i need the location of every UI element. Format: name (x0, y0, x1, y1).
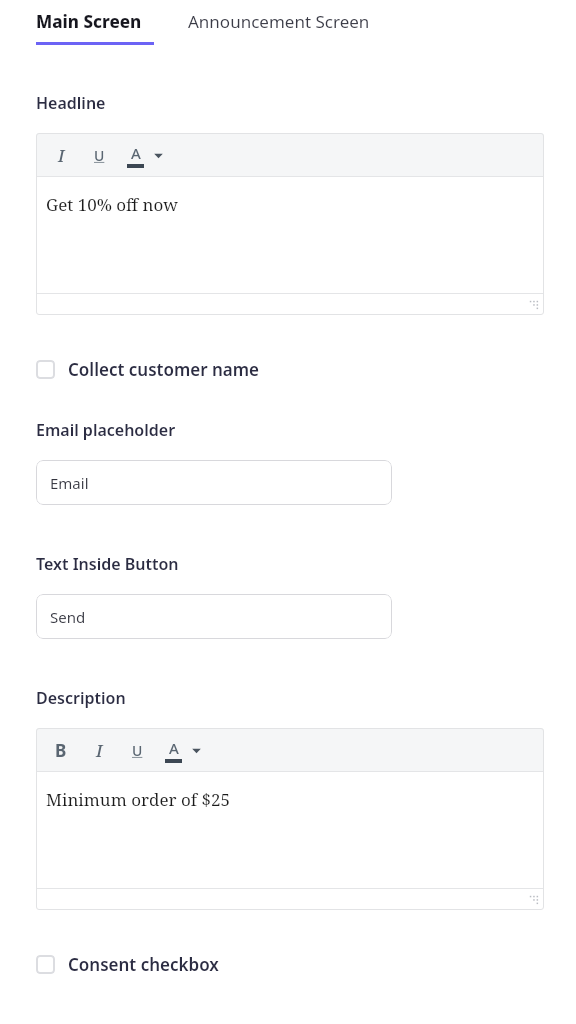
staticText: Get 10% off now (46, 193, 178, 216)
staticText: B (55, 739, 67, 762)
staticText: Text Inside Button (36, 553, 179, 575)
button[interactable]: Consent checkbox (36, 953, 219, 976)
button[interactable]: Italic (86, 737, 112, 763)
button[interactable]: Main Screen (36, 10, 154, 45)
button[interactable]: Send (36, 594, 392, 639)
button[interactable]: Italic (48, 142, 74, 168)
staticText: Announcement Screen (188, 10, 370, 33)
button[interactable]: Collect customer name (36, 358, 260, 381)
staticText: A (131, 143, 141, 163)
staticText: Description (36, 687, 126, 709)
button[interactable]: Announcement Screen (188, 10, 370, 33)
button[interactable]: Get 10% off now (36, 177, 544, 293)
button[interactable]: Text color (122, 142, 166, 168)
button[interactable]: Underline (124, 737, 150, 763)
button[interactable]: Bold (48, 737, 74, 763)
staticText: Collect customer name (68, 358, 260, 381)
staticText: I (96, 739, 103, 762)
staticText: I (58, 144, 65, 167)
staticText: Send (50, 607, 86, 627)
staticText: Email placeholder (36, 419, 176, 441)
button[interactable]: Minimum order of $25 (36, 772, 544, 888)
staticText: U (132, 741, 143, 760)
staticText: Main Screen (36, 10, 142, 33)
staticText: Consent checkbox (68, 953, 219, 976)
button[interactable]: Text color (160, 737, 204, 763)
staticText: Email (50, 473, 89, 493)
staticText: Minimum order of $25 (46, 788, 230, 811)
button[interactable]: Email (36, 460, 392, 505)
button[interactable]: Underline (86, 142, 112, 168)
staticText: Headline (36, 92, 106, 114)
staticText: U (94, 146, 105, 165)
staticText: A (169, 738, 179, 758)
